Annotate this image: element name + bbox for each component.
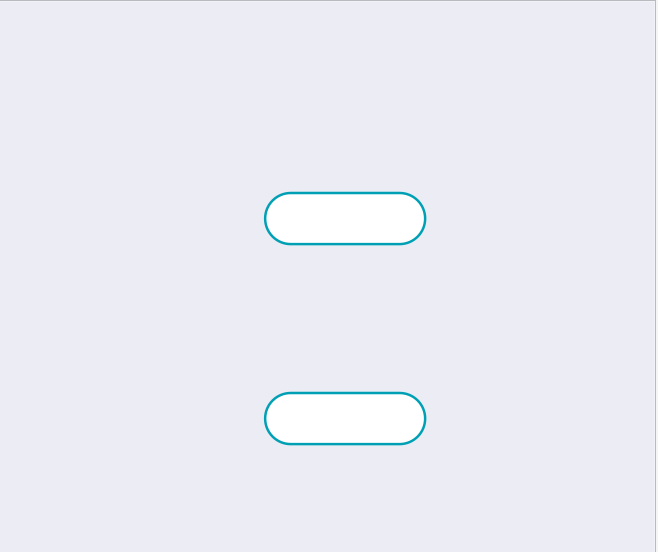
- button[interactable]: First action: [265, 193, 425, 244]
- button[interactable]: Second action: [265, 393, 425, 444]
